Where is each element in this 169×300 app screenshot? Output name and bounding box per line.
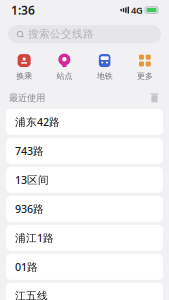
staticText: 搜索公交线路 [28,27,94,41]
button[interactable]: 743路 [6,138,163,164]
staticText: 更多 [137,71,153,81]
staticText: 换乘 [16,71,32,81]
button[interactable]: 浦江1路 [6,225,163,251]
staticText: 743路 [15,144,44,158]
button[interactable]: 更多 [125,51,165,83]
staticText: 最近使用 [9,92,45,104]
staticText: 4G [131,4,143,16]
staticText: 站点 [56,71,72,81]
staticText: 浦东42路 [15,115,60,129]
button[interactable]: 江五线 [6,283,163,300]
staticText: 13区间 [15,173,49,187]
staticText: 浦江1路 [15,231,54,245]
staticText: 01路 [15,260,38,274]
button[interactable]: 浦东42路 [6,109,163,135]
button[interactable]: 换乘 [4,51,44,83]
button[interactable]: 13区间 [6,167,163,193]
button[interactable]: 站点 [44,51,84,83]
button[interactable]: 搜索公交线路 [8,25,161,43]
staticText: 1:36 [11,2,35,18]
staticText: 936路 [15,202,44,216]
button[interactable]: 清除最近使用 [149,92,160,104]
staticText: 江五线 [15,289,48,300]
staticText: 地铁 [97,71,113,81]
button[interactable]: 01路 [6,254,163,280]
button[interactable]: 地铁 [84,51,125,83]
button[interactable]: 936路 [6,196,163,222]
